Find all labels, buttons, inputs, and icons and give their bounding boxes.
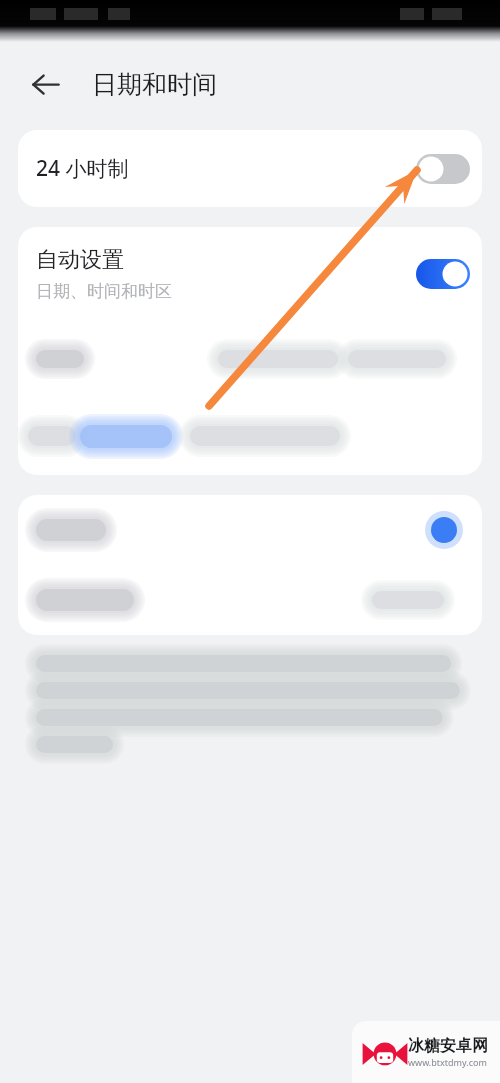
- button[interactable]: Auto settings toggle on: [416, 259, 470, 289]
- staticText: 自动设置: [36, 246, 124, 274]
- button[interactable]: [18, 565, 482, 635]
- button[interactable]: [18, 397, 482, 475]
- button[interactable]: 自动设置: [18, 227, 482, 321]
- staticText: 冰糖安卓网: [408, 1036, 488, 1056]
- staticText: www.btxtdmy.com: [408, 1056, 487, 1068]
- button[interactable]: [18, 495, 482, 565]
- button[interactable]: [18, 321, 482, 397]
- staticText: 24 小时制: [36, 154, 129, 183]
- button[interactable]: 24 小时制: [18, 130, 482, 207]
- staticText: 日期和时间: [92, 69, 217, 100]
- button[interactable]: Back: [22, 60, 70, 108]
- staticText: 日期、时间和时区: [36, 281, 172, 302]
- button[interactable]: 24 hour toggle off: [416, 154, 470, 184]
